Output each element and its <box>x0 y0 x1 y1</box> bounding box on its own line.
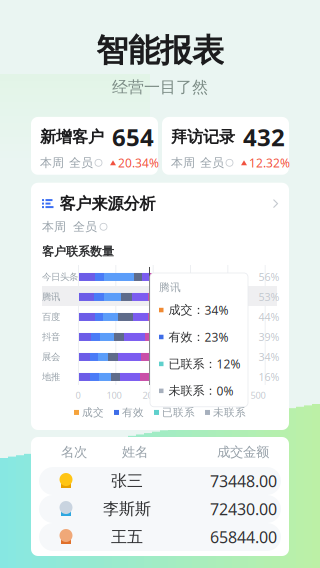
staticText: 39% <box>258 330 279 344</box>
staticText: 200 <box>142 389 157 401</box>
staticText: 已联系： <box>168 356 216 371</box>
staticText: 拜访记录 <box>171 127 235 147</box>
button[interactable]: 张三 <box>39 467 281 495</box>
staticText: 有效： <box>168 330 204 344</box>
staticText: 0 <box>75 389 80 401</box>
staticText: 姓名 <box>122 444 148 460</box>
staticText: 腾讯 <box>42 291 60 303</box>
staticText: 本周 <box>42 219 66 234</box>
staticText: 客户联系数量 <box>42 244 114 259</box>
staticText: 今日头条 <box>42 271 78 283</box>
staticText: 本周 <box>171 155 195 170</box>
staticText: 16% <box>258 370 279 384</box>
staticText: 百度 <box>42 311 60 323</box>
staticText: 智能报表 <box>96 31 224 70</box>
staticText: 名次 <box>61 444 87 460</box>
button[interactable]: 拜访记录 <box>162 117 289 175</box>
button[interactable]: 李斯斯 <box>39 495 281 523</box>
staticText: 300 <box>178 389 193 401</box>
staticText: 客户来源分析 <box>59 194 155 213</box>
staticText: 34% <box>258 350 279 364</box>
staticText: 本周 <box>40 155 64 170</box>
staticText: 12.32% <box>249 155 290 171</box>
staticText: 张三 <box>111 471 143 491</box>
staticText: 经营一目了然 <box>112 77 208 97</box>
staticText: 72430.00 <box>210 498 277 520</box>
staticText: 成交金额 <box>217 444 269 460</box>
staticText: 500 <box>250 389 265 401</box>
staticText: 有效 <box>122 406 144 419</box>
staticText: 65844.00 <box>210 526 277 548</box>
staticText: 未联系： <box>168 383 216 398</box>
staticText: 432 <box>243 121 285 153</box>
staticText: 100 <box>106 389 121 401</box>
staticText: 0% <box>216 383 233 399</box>
staticText: 12% <box>216 356 240 372</box>
staticText: 抖音 <box>42 331 60 343</box>
staticText: 成交 <box>82 406 104 419</box>
staticText: 李斯斯 <box>103 499 151 519</box>
staticText: 成交： <box>168 303 204 317</box>
staticText: 44% <box>258 310 279 324</box>
staticText: 地推 <box>42 371 60 383</box>
staticText: 53% <box>258 290 279 304</box>
staticText: 73448.00 <box>210 470 277 492</box>
button[interactable]: 王五 <box>39 523 281 551</box>
staticText: 全员 <box>69 155 93 170</box>
staticText: 已联系 <box>162 406 195 419</box>
staticText: 腾讯 <box>159 281 181 294</box>
staticText: 654 <box>112 121 154 153</box>
staticText: 20.34% <box>118 155 159 171</box>
button[interactable]: 新增客户 <box>31 117 158 175</box>
staticText: 王五 <box>111 527 143 547</box>
staticText: 展会 <box>42 351 60 363</box>
staticText: 全员 <box>73 219 97 234</box>
staticText: 400 <box>214 389 229 401</box>
staticText: 未联系 <box>213 406 246 419</box>
staticText: 56% <box>258 270 279 284</box>
staticText: 34% <box>204 302 228 318</box>
staticText: 全员 <box>200 155 224 170</box>
staticText: 23% <box>204 329 228 345</box>
staticText: 新增客户 <box>40 127 104 147</box>
